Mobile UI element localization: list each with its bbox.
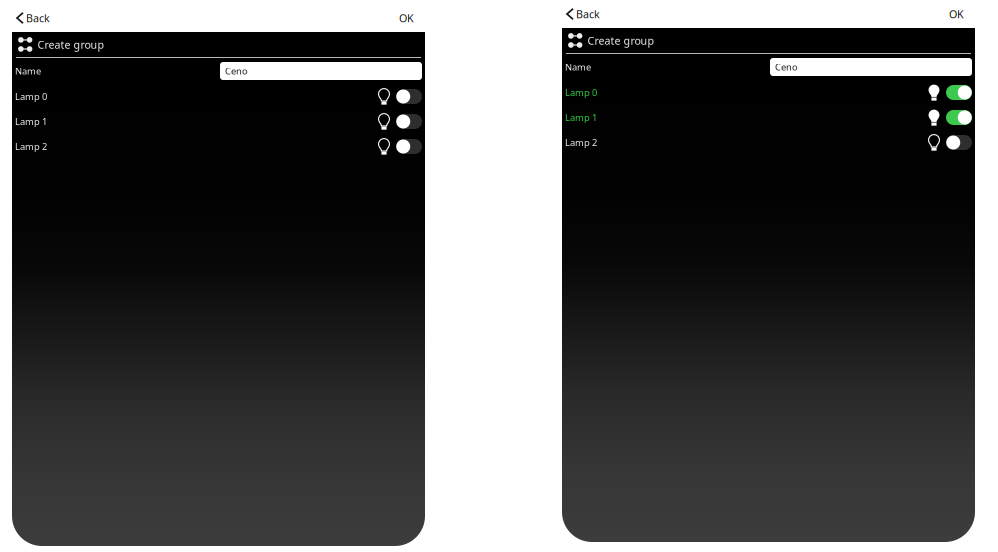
staticText: Ceno — [225, 65, 248, 77]
staticText: Lamp 2 — [15, 140, 47, 153]
button[interactable]: Lamp 0 — [562, 80, 928, 105]
staticText: Back — [576, 7, 600, 21]
staticText: Lamp 1 — [565, 111, 597, 124]
staticText: Name — [565, 61, 591, 73]
button[interactable]: Lamp 1 power, on — [928, 105, 975, 130]
button[interactable]: Lamp 0 power, on — [928, 80, 975, 105]
staticText: OK — [949, 7, 964, 21]
button[interactable]: Ceno — [220, 62, 422, 80]
button[interactable]: Lamp 1 — [12, 109, 378, 134]
button[interactable]: Back — [12, 2, 50, 30]
button[interactable]: OK — [938, 0, 975, 26]
staticText: OK — [399, 11, 414, 25]
staticText: Lamp 0 — [15, 90, 47, 103]
staticText: Ceno — [775, 61, 798, 73]
button[interactable]: Lamp 0 — [12, 84, 378, 109]
staticText: Lamp 2 — [565, 136, 597, 149]
button[interactable]: Back — [562, 0, 600, 26]
button[interactable]: OK — [388, 2, 425, 30]
button[interactable]: Lamp 1 power, off — [378, 109, 425, 134]
button[interactable]: Ceno — [770, 58, 972, 76]
button[interactable]: Lamp 2 power, off — [378, 134, 425, 159]
staticText: Create group — [37, 37, 104, 52]
staticText: Back — [26, 11, 50, 25]
button[interactable]: Lamp 2 — [562, 130, 928, 155]
staticText: Lamp 1 — [15, 115, 47, 128]
staticText: Name — [15, 65, 41, 77]
staticText: Create group — [587, 33, 654, 48]
button[interactable]: Lamp 0 power, off — [378, 84, 425, 109]
staticText: Lamp 0 — [565, 86, 597, 99]
button[interactable]: Lamp 2 power, off — [928, 130, 975, 155]
button[interactable]: Lamp 2 — [12, 134, 378, 159]
button[interactable]: Lamp 1 — [562, 105, 928, 130]
